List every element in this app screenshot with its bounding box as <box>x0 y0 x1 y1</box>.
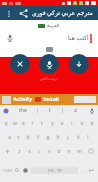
button[interactable]: More options <box>3 8 14 19</box>
staticText: a <box>8 134 11 141</box>
button[interactable]: r <box>28 116 37 130</box>
staticText: e <box>22 120 25 127</box>
button[interactable]: c <box>34 144 44 158</box>
staticText: j <box>67 134 69 141</box>
button[interactable]: Voice typing <box>88 107 95 114</box>
button[interactable]: n <box>64 144 74 158</box>
staticText: . <box>82 167 84 173</box>
staticText: العربية <box>47 23 60 28</box>
button[interactable]: Enter <box>86 158 96 182</box>
staticText: g <box>46 134 50 141</box>
button[interactable]: q <box>1 116 10 130</box>
button[interactable]: w <box>10 116 19 130</box>
button[interactable]: y <box>47 116 57 130</box>
button[interactable]: العربية <box>38 23 60 28</box>
button[interactable]: x <box>24 144 34 158</box>
button[interactable]: o <box>77 116 87 130</box>
button[interactable]: t <box>37 116 47 130</box>
staticText: p <box>90 120 94 127</box>
button[interactable]: p <box>87 116 97 130</box>
staticText: v <box>48 148 51 155</box>
staticText: ترجمة النص <box>40 76 58 81</box>
button[interactable]: Backspace <box>84 144 97 158</box>
button[interactable]: Space <box>31 167 78 174</box>
button[interactable]: Activity <box>2 94 96 105</box>
staticText: z <box>18 148 21 155</box>
staticText: y <box>51 120 54 127</box>
button[interactable]: s <box>14 130 23 144</box>
staticText: EN - TR <box>48 168 62 173</box>
staticText: h <box>56 134 60 141</box>
button[interactable]: l <box>83 130 93 144</box>
button[interactable]: j <box>63 130 73 144</box>
staticText: q <box>4 120 8 127</box>
staticText: Install <box>43 96 59 103</box>
button[interactable]: b <box>54 144 64 158</box>
button[interactable]: Emoji <box>21 166 29 174</box>
button[interactable]: Share <box>17 7 29 19</box>
button[interactable] <box>3 108 9 114</box>
staticText: o <box>80 120 84 127</box>
button[interactable]: f <box>33 130 43 144</box>
staticText: Activity <box>13 96 33 103</box>
button[interactable]: . <box>80 167 86 173</box>
staticText: i <box>71 120 73 127</box>
button[interactable]: Clear <box>10 54 30 74</box>
staticText: n <box>67 148 71 155</box>
button[interactable]: k <box>73 130 83 144</box>
staticText: t <box>41 120 43 127</box>
button[interactable]: z <box>14 144 24 158</box>
button[interactable]: Voice input <box>5 33 15 43</box>
button[interactable]: g <box>43 130 53 144</box>
button[interactable]: Save <box>69 54 89 74</box>
staticText: b <box>57 148 61 155</box>
staticText: s <box>17 134 20 141</box>
button[interactable]: Settings <box>13 166 21 174</box>
staticText: u <box>60 120 64 127</box>
button[interactable]: i <box>67 116 77 130</box>
button[interactable]: the <box>19 107 27 114</box>
button[interactable]: h <box>53 130 63 144</box>
staticText: c <box>38 148 41 155</box>
button[interactable]: u <box>57 116 67 130</box>
staticText: أكتب هنا <box>68 34 89 42</box>
staticText: ?123 <box>3 168 12 173</box>
button[interactable]: ?123 <box>2 158 13 182</box>
button[interactable]: v <box>44 144 54 158</box>
button[interactable]: m <box>74 144 84 158</box>
button[interactable]: I <box>49 107 51 114</box>
staticText: m <box>77 148 82 155</box>
button[interactable]: Translate <box>39 54 59 74</box>
staticText: d <box>26 134 30 141</box>
staticText: k <box>77 134 80 141</box>
button[interactable]: Shift <box>1 144 14 158</box>
staticText: مترجم عربي تركي فوري <box>32 9 93 17</box>
button[interactable]: d <box>23 130 33 144</box>
staticText: r <box>31 120 34 127</box>
staticText: f <box>37 134 39 141</box>
staticText: l <box>87 134 89 141</box>
button[interactable]: a <box>74 107 77 114</box>
staticText: x <box>28 148 31 155</box>
staticText: w <box>13 120 17 127</box>
button[interactable]: a <box>5 130 14 144</box>
button[interactable]: e <box>19 116 28 130</box>
